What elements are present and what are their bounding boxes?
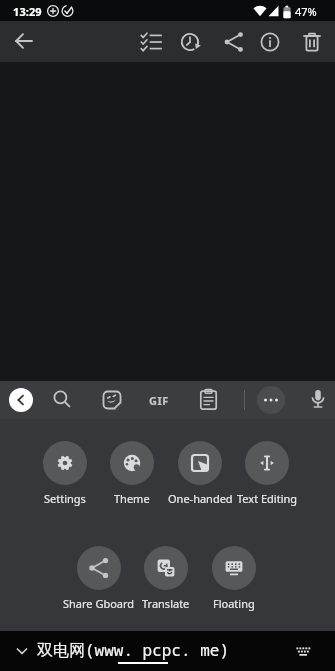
button[interactable] bbox=[292, 21, 332, 62]
button[interactable] bbox=[214, 21, 254, 62]
staticText: Share Gboard bbox=[63, 596, 135, 611]
staticText: 47% bbox=[295, 4, 317, 19]
staticText: Theme bbox=[114, 491, 150, 506]
button[interactable]: GIF bbox=[139, 381, 179, 419]
button[interactable]: Settings bbox=[26, 441, 104, 506]
button[interactable] bbox=[290, 639, 316, 663]
button[interactable] bbox=[4, 21, 44, 61]
button[interactable]: Text Editing bbox=[228, 441, 306, 506]
button[interactable] bbox=[131, 21, 171, 62]
button[interactable] bbox=[43, 381, 83, 419]
button[interactable] bbox=[8, 635, 36, 667]
staticText: GIF bbox=[149, 393, 169, 408]
button[interactable] bbox=[9, 388, 33, 412]
button[interactable]: One-handed bbox=[161, 441, 239, 506]
staticText: Text Editing bbox=[237, 491, 298, 506]
button[interactable] bbox=[250, 21, 290, 62]
button[interactable]: Theme bbox=[93, 441, 171, 506]
button[interactable] bbox=[170, 21, 210, 62]
staticText: Settings bbox=[44, 491, 86, 506]
button[interactable]: Floating bbox=[195, 546, 273, 611]
staticText: Translate bbox=[142, 596, 190, 611]
button[interactable] bbox=[189, 381, 229, 419]
button[interactable]: Translate bbox=[127, 546, 205, 611]
staticText: One-handed bbox=[168, 491, 233, 506]
button[interactable] bbox=[92, 381, 132, 419]
button[interactable] bbox=[298, 381, 335, 419]
button[interactable]: Share Gboard bbox=[60, 546, 138, 611]
staticText: 13:29 bbox=[13, 4, 42, 19]
button[interactable] bbox=[257, 386, 285, 414]
staticText: 双电网(www. pcpc. me) bbox=[37, 639, 230, 661]
staticText: Floating bbox=[213, 596, 255, 611]
